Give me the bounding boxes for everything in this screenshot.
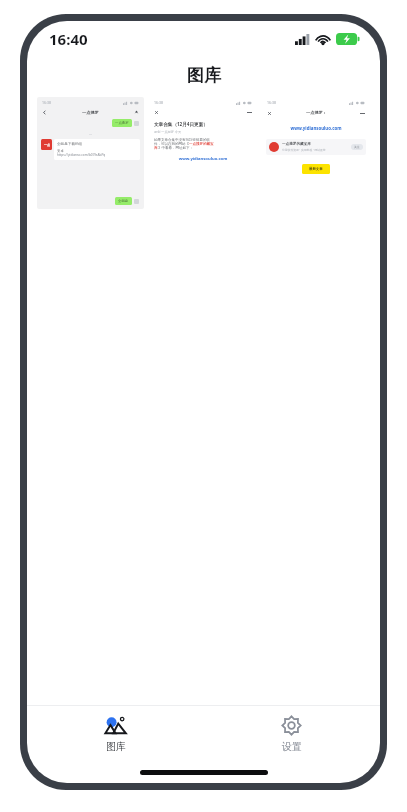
staticText: 一点搜罗 [82, 110, 99, 115]
staticText: 库 [154, 146, 158, 150]
staticText: www.yidiansouluo.com [154, 156, 252, 162]
staticText: 文章合集（12月4日更新） [154, 121, 208, 127]
staticText: 16:40 [49, 29, 88, 49]
staticText: 16:38 [267, 100, 276, 105]
staticText: 全能盘 [118, 199, 129, 203]
button[interactable]: 设置 [262, 709, 321, 758]
staticText: 图库 [187, 65, 221, 86]
staticText: 安卓 [57, 149, 64, 153]
staticText: 一点 [44, 143, 50, 147]
staticText: 图库 [106, 740, 126, 753]
staticText: 16:38 [42, 100, 51, 105]
button[interactable]: 图库 [86, 709, 145, 758]
staticText: 原创 一点搜罗 今天 [154, 130, 182, 134]
staticText: 分享软件资源 · 实用教程 · 网站推荐 [282, 148, 326, 152]
button[interactable]: 16:38 [149, 97, 257, 209]
staticText: 一点搜罗 [115, 121, 129, 125]
staticText: https://yidianso.com/b07feAbPq [57, 153, 106, 157]
staticText: 一点搜罗 › [306, 110, 326, 116]
button[interactable]: 16:38 [37, 97, 144, 209]
staticText: 全能盘下载助组 [57, 142, 83, 147]
staticText: 】中看看，网址如下： [158, 146, 193, 150]
staticText: 如果文章合集中没有找到你想要的软 [154, 138, 210, 142]
button[interactable]: 16:38 [262, 97, 370, 209]
staticText: 件，可以在我的网站【 [154, 142, 189, 146]
staticText: 关注 [354, 145, 360, 149]
staticText: 设置 [282, 740, 302, 753]
staticText: www.yidiansouluo.com [262, 125, 370, 131]
staticText: 最新文章 [309, 167, 323, 171]
staticText: 一点搜罗的藏宝 [189, 142, 214, 146]
staticText: 16:38 [154, 100, 163, 105]
staticText: 一点搜罗的藏宝库 [282, 142, 311, 147]
